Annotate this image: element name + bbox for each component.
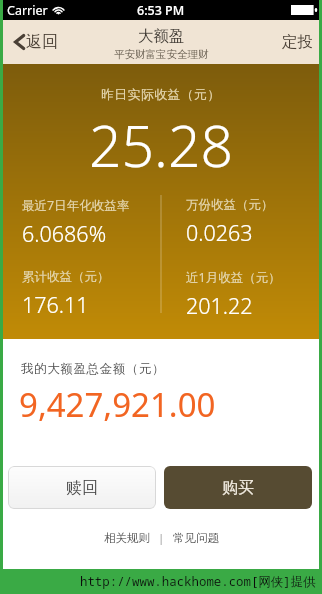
button[interactable]: 返回 — [3, 26, 68, 58]
button[interactable]: 购买 — [164, 466, 312, 509]
staticText: 近1月收益（元） — [186, 269, 281, 286]
staticText: 9,427,921.00 — [19, 382, 216, 427]
staticText: 平安财富宝安全理财 — [114, 48, 209, 61]
staticText: 0.0263 — [186, 218, 253, 247]
staticText: 25.28 — [89, 106, 234, 184]
button[interactable]: 定投 — [272, 24, 319, 60]
staticText: http://www.hackhome.com[网侠]提供 — [80, 573, 316, 590]
staticText: 昨日实际收益（元） — [101, 87, 221, 103]
staticText: 6.0686% — [22, 219, 107, 248]
staticText: 176.11 — [22, 290, 89, 319]
staticText: 万份收益（元） — [186, 197, 274, 213]
button[interactable]: 相关规则 — [96, 527, 158, 549]
staticText: 相关规则 — [104, 531, 150, 545]
staticText: 定投 — [282, 32, 313, 52]
staticText: 大额盈 — [138, 26, 185, 46]
staticText: 最近7日年化收益率 — [22, 197, 130, 214]
staticText: 赎回 — [66, 478, 98, 498]
staticText: 购买 — [222, 478, 254, 498]
staticText: 201.22 — [186, 291, 253, 320]
staticText: 6:53 PM — [137, 2, 185, 19]
staticText: 常见问题 — [173, 531, 219, 545]
staticText: 我的大额盈总金额（元） — [21, 361, 166, 377]
staticText: Carrier — [7, 2, 48, 19]
button[interactable]: 常见问题 — [165, 527, 227, 549]
button[interactable]: 赎回 — [8, 466, 156, 509]
staticText: 累计收益（元） — [22, 269, 110, 285]
staticText: 返回 — [26, 32, 58, 52]
staticText: | — [158, 530, 165, 546]
